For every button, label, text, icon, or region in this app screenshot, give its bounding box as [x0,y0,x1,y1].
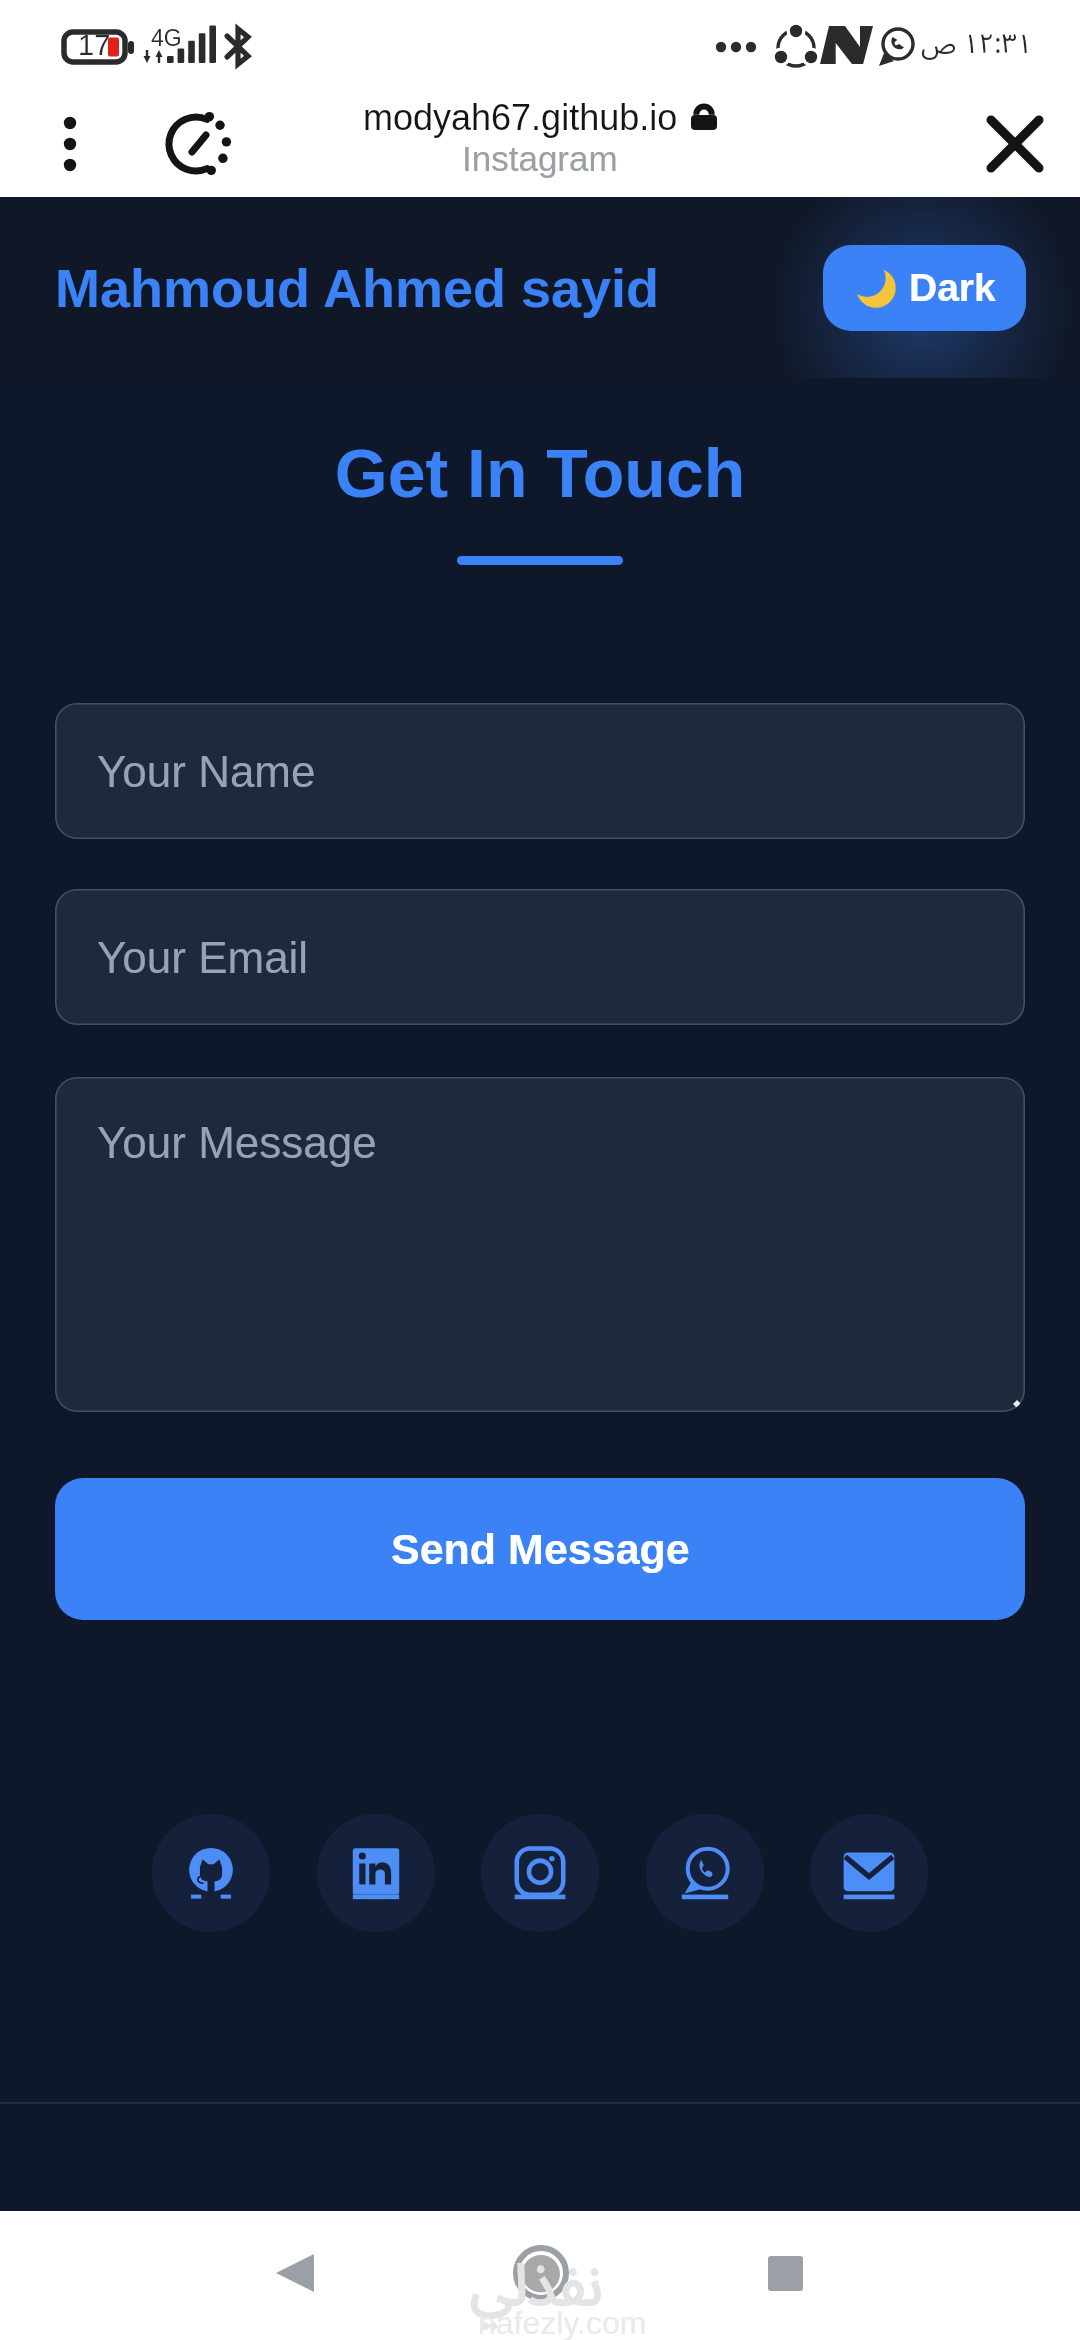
staticText: Your Message [97,1118,377,1167]
staticText: 4G [151,25,182,51]
staticText: 17 [78,29,111,61]
button[interactable]: Home [497,2229,585,2317]
staticText: nafezly.com [478,2305,647,2340]
staticText: نفذلي [470,2225,603,2340]
button[interactable]: Close [973,102,1057,186]
staticText: Your Name [97,747,316,796]
button[interactable]: Dark [823,245,1026,331]
staticText: ١٢:٣١ ص [921,16,1033,73]
button[interactable]: Your Email [55,889,1025,1025]
button[interactable]: WhatsApp [646,1814,764,1932]
button[interactable]: More options [34,108,106,180]
staticText: modyah67.github.io [363,97,678,137]
button[interactable]: LinkedIn [317,1814,435,1932]
button[interactable]: GitHub [152,1814,270,1932]
button[interactable]: Stop loading [150,98,242,190]
staticText: Your Email [97,933,309,982]
button[interactable]: Back [251,2229,339,2317]
staticText: Send Message [391,1525,690,1573]
button[interactable]: Your Name [55,703,1025,839]
staticText: Mahmoud Ahmed sayid [55,258,660,318]
button[interactable]: Email [810,1814,928,1932]
staticText: Dark [909,266,996,310]
button[interactable]: Send Message [55,1478,1025,1620]
button[interactable]: Your Message [55,1077,1025,1412]
staticText: Instagram [462,139,618,178]
button[interactable]: Instagram [481,1814,599,1932]
button[interactable]: Recents [741,2229,829,2317]
staticText: Get In Touch [0,435,1080,511]
